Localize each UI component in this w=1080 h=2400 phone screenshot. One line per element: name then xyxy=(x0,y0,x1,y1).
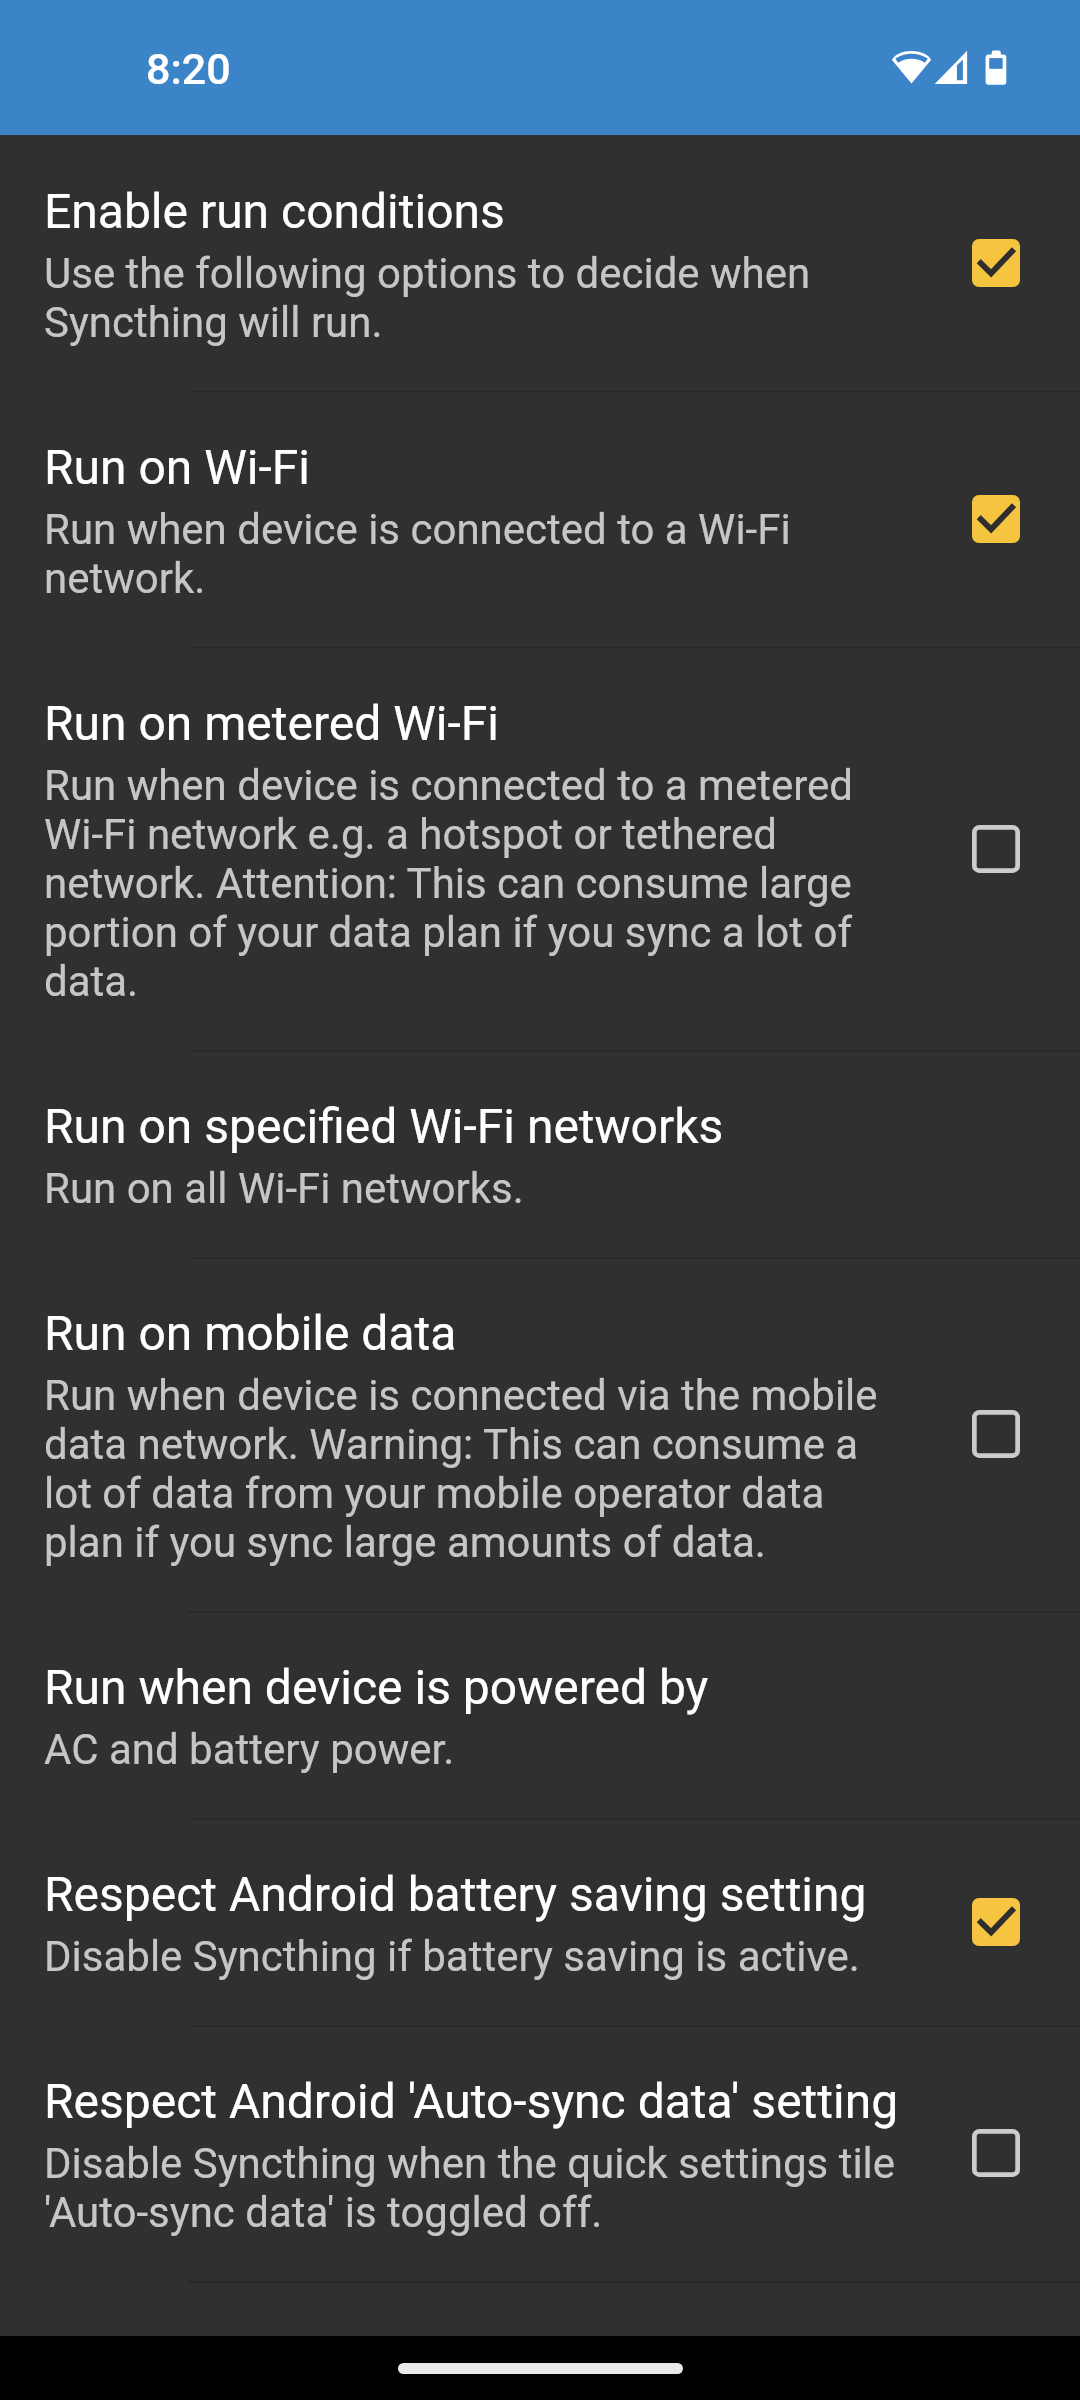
button[interactable]: Run on Wi-Fi, checked xyxy=(972,495,1020,543)
button[interactable]: Run on mobile data xyxy=(0,1257,1080,1611)
button[interactable]: Run on metered Wi-Fi xyxy=(0,647,1080,1050)
staticText: 8:20 xyxy=(146,44,231,94)
staticText: Run when device is connected to a Wi-Fi … xyxy=(44,505,791,603)
button[interactable]: Run on metered Wi-Fi, not checked xyxy=(972,825,1020,873)
staticText: Enable run conditions xyxy=(44,183,505,239)
staticText: Disable Syncthing if battery saving is a… xyxy=(44,1932,860,1981)
staticText: Use the following options to decide when… xyxy=(44,249,811,347)
button[interactable]: Run on mobile data, not checked xyxy=(972,1410,1020,1458)
button[interactable]: Run when device is powered by xyxy=(0,1611,1080,1818)
button[interactable]: Respect Android 'Auto-sync data' setting xyxy=(0,2025,1080,2281)
staticText: Run on specified Wi-Fi networks xyxy=(44,1098,724,1154)
staticText: Run on metered Wi-Fi xyxy=(44,695,499,751)
staticText: Run when device is powered by xyxy=(44,1659,709,1715)
button[interactable]: Respect Android 'Auto-sync data' setting… xyxy=(972,2129,1020,2177)
button[interactable]: Enable run conditions, checked xyxy=(972,239,1020,287)
button[interactable]: Run on Wi-Fi xyxy=(0,391,1080,647)
staticText: Disable Syncthing when the quick setting… xyxy=(44,2139,896,2237)
staticText: Run on Wi-Fi xyxy=(44,439,310,495)
staticText: Run when device is connected to a metere… xyxy=(44,761,854,1006)
staticText: Run when device is connected via the mob… xyxy=(44,1371,878,1567)
staticText: Run on mobile data xyxy=(44,1305,457,1361)
button[interactable]: Run on specified Wi-Fi networks xyxy=(0,1050,1080,1257)
staticText: Respect Android battery saving setting xyxy=(44,1866,867,1922)
button[interactable]: Enable run conditions xyxy=(0,135,1080,391)
staticText: AC and battery power. xyxy=(44,1725,455,1774)
button[interactable]: Respect Android battery saving setting xyxy=(0,1818,1080,2025)
other: Status icons xyxy=(892,48,1022,88)
staticText: Run on all Wi-Fi networks. xyxy=(44,1164,524,1213)
button[interactable]: Respect Android battery saving setting, … xyxy=(972,1898,1020,1946)
staticText: Respect Android 'Auto-sync data' setting xyxy=(44,2073,899,2129)
